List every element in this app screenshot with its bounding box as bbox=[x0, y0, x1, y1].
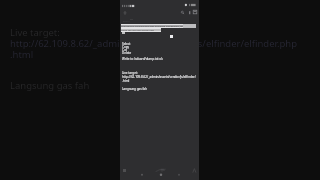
staticText: Delete bbox=[122, 51, 132, 55]
button[interactable]: Menu bbox=[192, 9, 198, 15]
staticText: .html bbox=[10, 48, 34, 61]
button[interactable]: Bookmark bbox=[186, 9, 192, 15]
staticText: Select bbox=[122, 42, 131, 46]
staticText: Cut bbox=[122, 48, 127, 52]
staticText: http://62.109.8.62/_admin/assets/vendor/… bbox=[122, 75, 201, 79]
button[interactable]: Selected text bbox=[121, 24, 196, 28]
button[interactable]: Suggestions bbox=[155, 168, 168, 176]
button[interactable]: Back bbox=[139, 172, 145, 178]
staticText: Langsung gas fah bbox=[122, 87, 148, 91]
button[interactable]: Send bbox=[192, 168, 197, 174]
staticText: Editor bbox=[123, 19, 130, 22]
staticText: Live target: bbox=[122, 71, 138, 75]
staticText: Live target: bbox=[10, 26, 60, 39]
button[interactable]: Recents bbox=[176, 172, 182, 178]
staticText: Write to /sdcard/dump.txt ok bbox=[122, 57, 163, 61]
button[interactable]: New tab bbox=[121, 9, 128, 16]
staticText: Copy bbox=[122, 45, 130, 49]
staticText: .html bbox=[122, 79, 130, 83]
staticText: http://62.109.8.62/_admin/assets/vendor/… bbox=[10, 37, 298, 50]
staticText: check the live path below now bbox=[121, 28, 154, 31]
staticText: anonymous-sh/setup.php was uploaded succ… bbox=[121, 24, 184, 27]
button[interactable]: Home bbox=[158, 172, 164, 178]
button[interactable]: Search bbox=[179, 9, 185, 15]
staticText: Langsung gas fah bbox=[10, 79, 90, 92]
